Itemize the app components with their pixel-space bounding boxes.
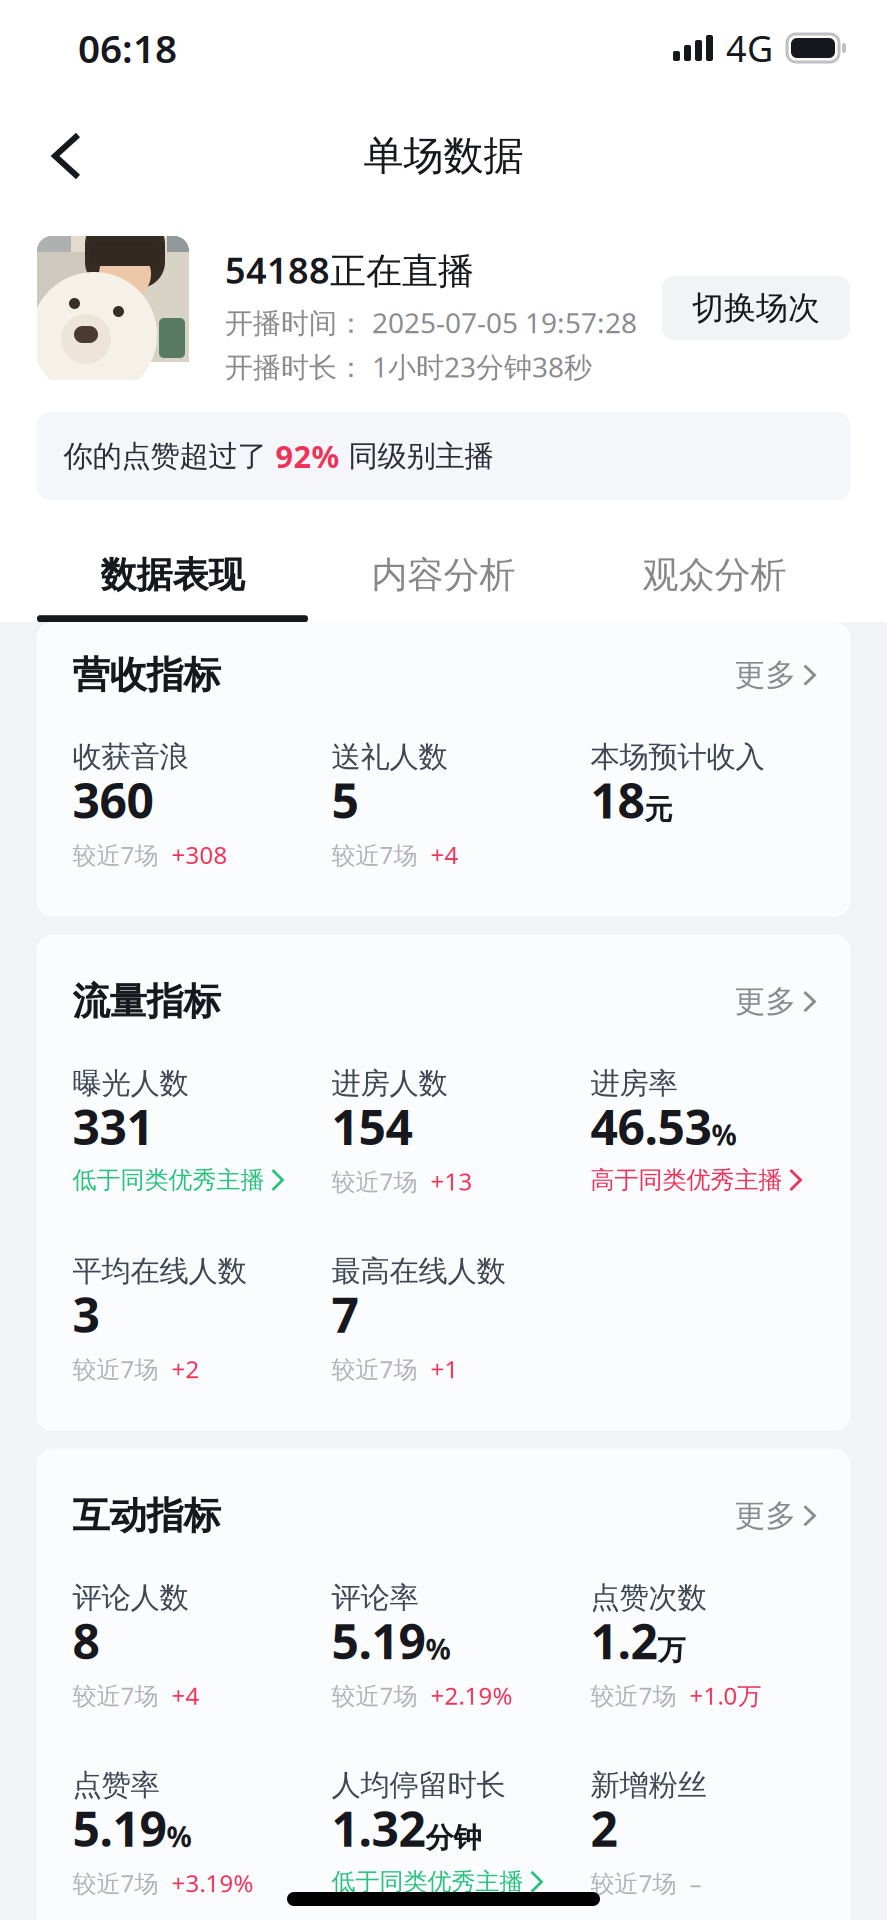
- staticText: 4G: [726, 24, 773, 72]
- staticText: 进房人数: [331, 1065, 447, 1101]
- staticText: 高于同类优秀主播: [590, 1165, 782, 1195]
- staticText: 较近7场: [331, 839, 417, 871]
- staticText: +1: [430, 1353, 458, 1385]
- staticText: 46.53: [590, 1095, 711, 1158]
- staticText: 人均停留时长: [331, 1767, 505, 1803]
- staticText: 360: [72, 768, 153, 832]
- staticText: 2: [590, 1796, 617, 1860]
- button[interactable]: 高于同类优秀主播: [590, 1165, 800, 1195]
- staticText: 5.19: [72, 1796, 166, 1860]
- staticText: 收获音浪: [72, 739, 188, 775]
- staticText: 互动指标: [72, 1493, 220, 1539]
- button[interactable]: 更多: [734, 1497, 814, 1535]
- staticText: 开播时长： 1小时23分钟38秒: [225, 348, 592, 385]
- staticText: 曝光人数: [72, 1065, 188, 1101]
- staticText: 内容分析: [371, 553, 515, 597]
- staticText: 进房率: [590, 1065, 677, 1101]
- staticText: 流量指标: [72, 979, 220, 1025]
- button[interactable]: 更多: [734, 656, 814, 694]
- staticText: 点赞次数: [590, 1580, 706, 1616]
- staticText: 分钟: [425, 1821, 481, 1855]
- staticText: 较近7场: [331, 1165, 417, 1197]
- button[interactable]: 低于同类优秀主播: [331, 1867, 541, 1897]
- staticText: +308: [171, 839, 227, 871]
- button[interactable]: 观众分析: [579, 500, 850, 622]
- staticText: 18: [590, 768, 644, 832]
- staticText: 更多: [734, 983, 796, 1020]
- staticText: 较近7场: [590, 1867, 676, 1899]
- staticText: +4: [430, 839, 458, 871]
- staticText: 06:18: [78, 22, 177, 74]
- staticText: 7: [331, 1282, 358, 1346]
- staticText: 点赞率: [72, 1767, 159, 1803]
- staticText: 更多: [734, 1497, 796, 1535]
- staticText: 更多: [734, 656, 796, 694]
- staticText: +2.19%: [430, 1679, 512, 1711]
- staticText: +3.19%: [171, 1867, 253, 1899]
- staticText: 较近7场: [331, 1679, 417, 1711]
- staticText: 切换场次: [692, 288, 820, 328]
- staticText: 评论人数: [72, 1580, 188, 1616]
- staticText: 3: [72, 1282, 99, 1346]
- staticText: 新增粉丝: [590, 1767, 706, 1803]
- staticText: 较近7场: [72, 1679, 158, 1711]
- staticText: 5: [331, 768, 358, 832]
- button[interactable]: 低于同类优秀主播: [72, 1165, 282, 1195]
- staticText: 同级别主播: [339, 438, 493, 474]
- staticText: 较近7场: [331, 1353, 417, 1385]
- staticText: 评论率: [331, 1580, 418, 1616]
- button[interactable]: 内容分析: [308, 500, 579, 622]
- staticText: 8: [72, 1609, 99, 1672]
- staticText: 开播时间： 2025-07-05 19:57:28: [225, 304, 637, 341]
- staticText: 单场数据: [363, 131, 523, 180]
- staticText: 154: [331, 1095, 412, 1158]
- staticText: –: [689, 1867, 701, 1899]
- staticText: 54188正在直播: [225, 246, 474, 294]
- staticText: %: [425, 1630, 450, 1667]
- staticText: 元: [644, 792, 672, 827]
- button[interactable]: 切换场次: [662, 276, 850, 340]
- staticText: 92%: [275, 436, 339, 476]
- staticText: 较近7场: [590, 1679, 676, 1711]
- staticText: 较近7场: [72, 1867, 158, 1899]
- staticText: 平均在线人数: [72, 1253, 246, 1289]
- staticText: 1.2: [590, 1609, 657, 1672]
- staticText: 数据表现: [100, 553, 244, 597]
- staticText: 你的点赞超过了: [63, 438, 275, 474]
- staticText: 1.32: [331, 1796, 425, 1860]
- staticText: 低于同类优秀主播: [72, 1165, 264, 1195]
- staticText: 331: [72, 1095, 153, 1158]
- staticText: +13: [430, 1165, 472, 1197]
- staticText: 万: [657, 1633, 685, 1667]
- button[interactable]: 返回: [0, 107, 102, 205]
- staticText: %: [711, 1116, 736, 1153]
- staticText: 最高在线人数: [331, 1253, 505, 1289]
- staticText: 送礼人数: [331, 739, 447, 775]
- staticText: 本场预计收入: [590, 739, 764, 775]
- button[interactable]: 数据表现: [37, 500, 308, 622]
- staticText: 低于同类优秀主播: [331, 1867, 523, 1897]
- button[interactable]: 更多: [734, 983, 814, 1020]
- staticText: 5.19: [331, 1609, 425, 1672]
- staticText: 营收指标: [72, 652, 220, 698]
- staticText: +2: [171, 1353, 199, 1385]
- staticText: 较近7场: [72, 839, 158, 871]
- staticText: +4: [171, 1679, 199, 1711]
- staticText: 观众分析: [642, 553, 786, 597]
- staticText: 较近7场: [72, 1353, 158, 1385]
- staticText: %: [166, 1818, 191, 1855]
- staticText: +1.0万: [689, 1679, 761, 1711]
